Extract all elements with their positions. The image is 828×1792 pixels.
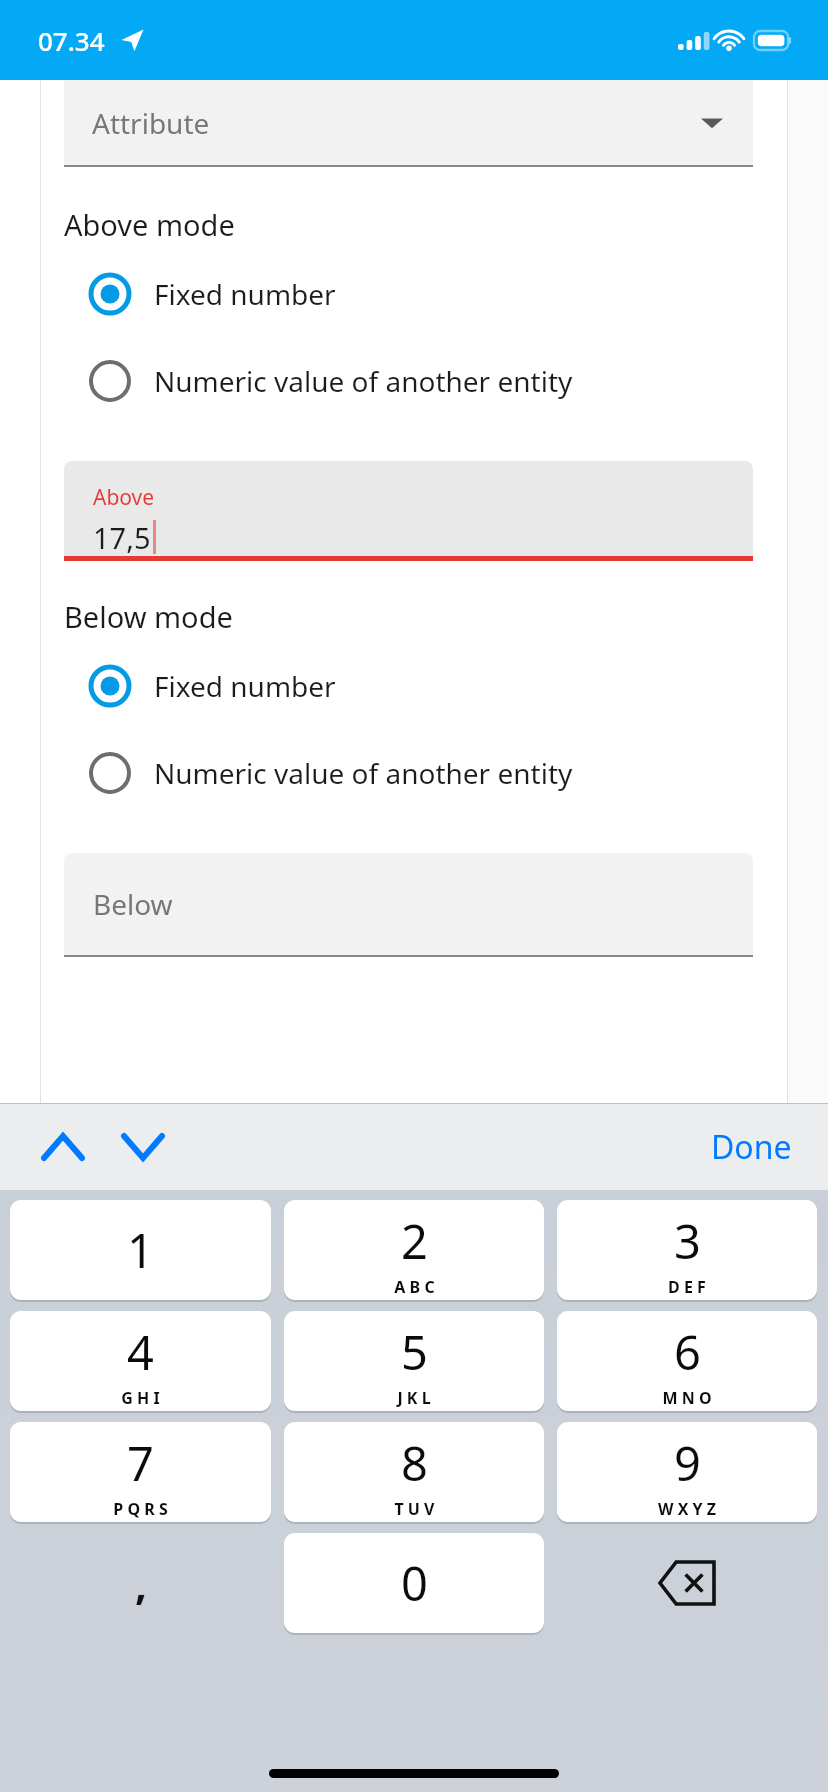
button[interactable]: Previous field bbox=[30, 1114, 96, 1180]
button[interactable]: 2 bbox=[284, 1200, 544, 1300]
button[interactable]: Below bbox=[64, 853, 753, 955]
staticText: D E F bbox=[668, 1276, 706, 1298]
button[interactable]: 5 bbox=[284, 1311, 544, 1411]
staticText: G H I bbox=[121, 1387, 160, 1409]
staticText: 0 bbox=[401, 1551, 428, 1615]
staticText: Attribute bbox=[92, 104, 210, 142]
button[interactable]: 9 bbox=[557, 1422, 817, 1522]
button[interactable]: 8 bbox=[284, 1422, 544, 1522]
staticText: W X Y Z bbox=[658, 1498, 716, 1520]
staticText: Done bbox=[711, 1125, 792, 1169]
staticText: 5 bbox=[401, 1320, 428, 1384]
button[interactable]: 4 bbox=[10, 1311, 271, 1411]
staticText: 6 bbox=[674, 1320, 701, 1384]
staticText: 2 bbox=[401, 1209, 428, 1273]
staticText: 1 bbox=[127, 1218, 154, 1282]
staticText: Fixed number bbox=[154, 275, 336, 313]
staticText: T U V bbox=[394, 1498, 435, 1520]
button[interactable]: Numeric value of another entity bbox=[64, 745, 753, 801]
button[interactable]: Comma bbox=[10, 1533, 271, 1633]
button[interactable]: 3 bbox=[557, 1200, 817, 1300]
staticText: M N O bbox=[662, 1387, 712, 1409]
button[interactable]: Fixed number bbox=[64, 658, 753, 714]
staticText: J K L bbox=[397, 1387, 431, 1409]
staticText: Below bbox=[93, 885, 173, 923]
button[interactable]: Fixed number bbox=[64, 266, 753, 322]
button[interactable]: Above bbox=[64, 461, 753, 556]
button[interactable]: Attribute bbox=[64, 80, 753, 165]
staticText: 3 bbox=[674, 1209, 701, 1273]
staticText: Numeric value of another entity bbox=[154, 754, 573, 792]
staticText: A B C bbox=[394, 1276, 435, 1298]
button[interactable]: 0 bbox=[284, 1533, 544, 1633]
staticText: Above bbox=[93, 483, 155, 512]
staticText: 17,5 bbox=[93, 518, 151, 556]
button[interactable]: Done bbox=[697, 1117, 806, 1177]
button[interactable]: Backspace bbox=[557, 1533, 817, 1633]
button[interactable]: Numeric value of another entity bbox=[64, 353, 753, 409]
button[interactable]: 1 bbox=[10, 1200, 271, 1300]
staticText: Fixed number bbox=[154, 667, 336, 705]
staticText: , bbox=[135, 1555, 147, 1612]
button[interactable]: 7 bbox=[10, 1422, 271, 1522]
staticText: Above mode bbox=[64, 205, 235, 244]
staticText: 07.34 bbox=[38, 23, 105, 58]
staticText: 9 bbox=[674, 1431, 701, 1495]
staticText: Below mode bbox=[64, 597, 233, 636]
button[interactable]: Next field bbox=[110, 1114, 176, 1180]
staticText: 4 bbox=[127, 1320, 154, 1384]
staticText: 7 bbox=[127, 1431, 154, 1495]
staticText: Numeric value of another entity bbox=[154, 362, 573, 400]
staticText: P Q R S bbox=[113, 1498, 168, 1520]
staticText: 8 bbox=[401, 1431, 428, 1495]
button[interactable]: 6 bbox=[557, 1311, 817, 1411]
